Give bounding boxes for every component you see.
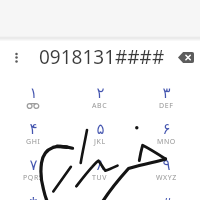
staticText: ۷ [29,156,38,173]
staticText: ۶ [162,120,171,137]
staticText: ۵ [96,120,105,137]
staticText: ۳ [162,84,171,101]
staticText: TUV [92,173,108,183]
staticText: ۹ [162,156,171,173]
button[interactable]: ۵ [66,120,133,156]
staticText: MNO [157,137,176,147]
staticText: ۴ [29,120,38,137]
staticText: WXYZ [156,173,177,183]
staticText: # [162,192,172,200]
staticText: 0918131#### [39,44,165,70]
button[interactable]: ۳ [133,84,200,120]
staticText: ۱ [29,84,38,101]
button[interactable]: More options [0,40,32,74]
button[interactable]: ۴ [0,120,66,156]
button[interactable]: ۷ [0,156,66,192]
staticText: ۸ [96,156,105,173]
staticText: DEF [159,101,174,111]
button[interactable]: Backspace [172,40,200,74]
staticText: ۲ [96,84,105,101]
staticText: ABC [92,101,108,111]
staticText: PQRS [23,173,44,183]
staticText: ۰ [95,192,104,200]
button[interactable]: # [133,192,200,200]
staticText: JKL [94,137,106,147]
button[interactable]: ۲ [66,84,133,120]
button[interactable]: ۰ [66,192,133,200]
button[interactable]: ۶ [133,120,200,156]
button[interactable]: ۱ [0,84,66,120]
button[interactable]: * [0,192,66,200]
button[interactable]: ۹ [133,156,200,192]
staticText: GHI [26,137,41,147]
staticText: * [29,192,38,200]
button[interactable]: ۸ [66,156,133,192]
